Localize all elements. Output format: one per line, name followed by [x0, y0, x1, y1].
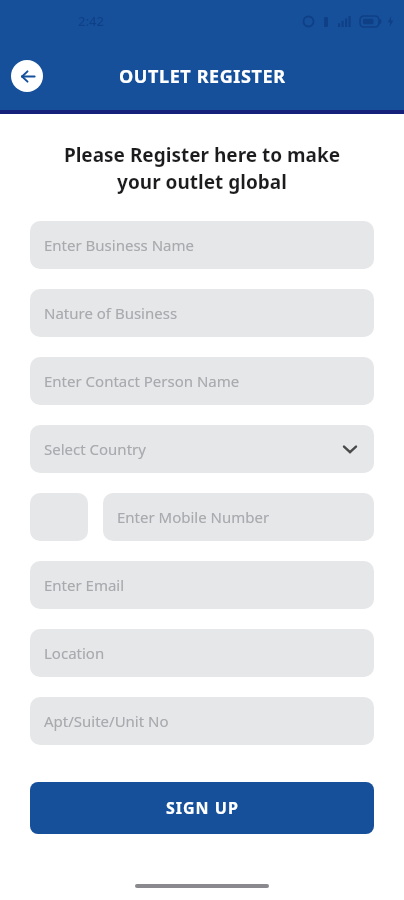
staticText: Enter Mobile Number: [117, 507, 270, 527]
staticText: 2:42: [78, 12, 104, 30]
button[interactable]: Enter Email: [30, 561, 374, 609]
staticText: Enter Business Name: [44, 235, 194, 255]
staticText: Nature of Business: [44, 303, 178, 323]
button[interactable]: SIGN UP: [30, 782, 374, 834]
staticText: Select Country: [44, 439, 146, 459]
button[interactable]: Enter Contact Person Name: [30, 357, 374, 405]
staticText: Location: [44, 643, 105, 663]
button[interactable]: Select country code: [30, 493, 88, 541]
button[interactable]: Location: [30, 629, 374, 677]
staticText: Apt/Suite/Unit No: [44, 711, 169, 731]
staticText: Enter Contact Person Name: [44, 371, 240, 391]
staticText: Enter Email: [44, 575, 125, 595]
button[interactable]: Apt/Suite/Unit No: [30, 697, 374, 745]
button[interactable]: Enter Mobile Number: [103, 493, 374, 541]
staticText: SIGN UP: [166, 797, 239, 819]
button[interactable]: Select Country: [30, 425, 374, 473]
staticText: OUTLET REGISTER: [119, 64, 286, 89]
button[interactable]: Back: [11, 60, 43, 92]
staticText: Please Register here to make your outlet…: [24, 142, 380, 195]
button[interactable]: Enter Business Name: [30, 221, 374, 269]
button[interactable]: Nature of Business: [30, 289, 374, 337]
